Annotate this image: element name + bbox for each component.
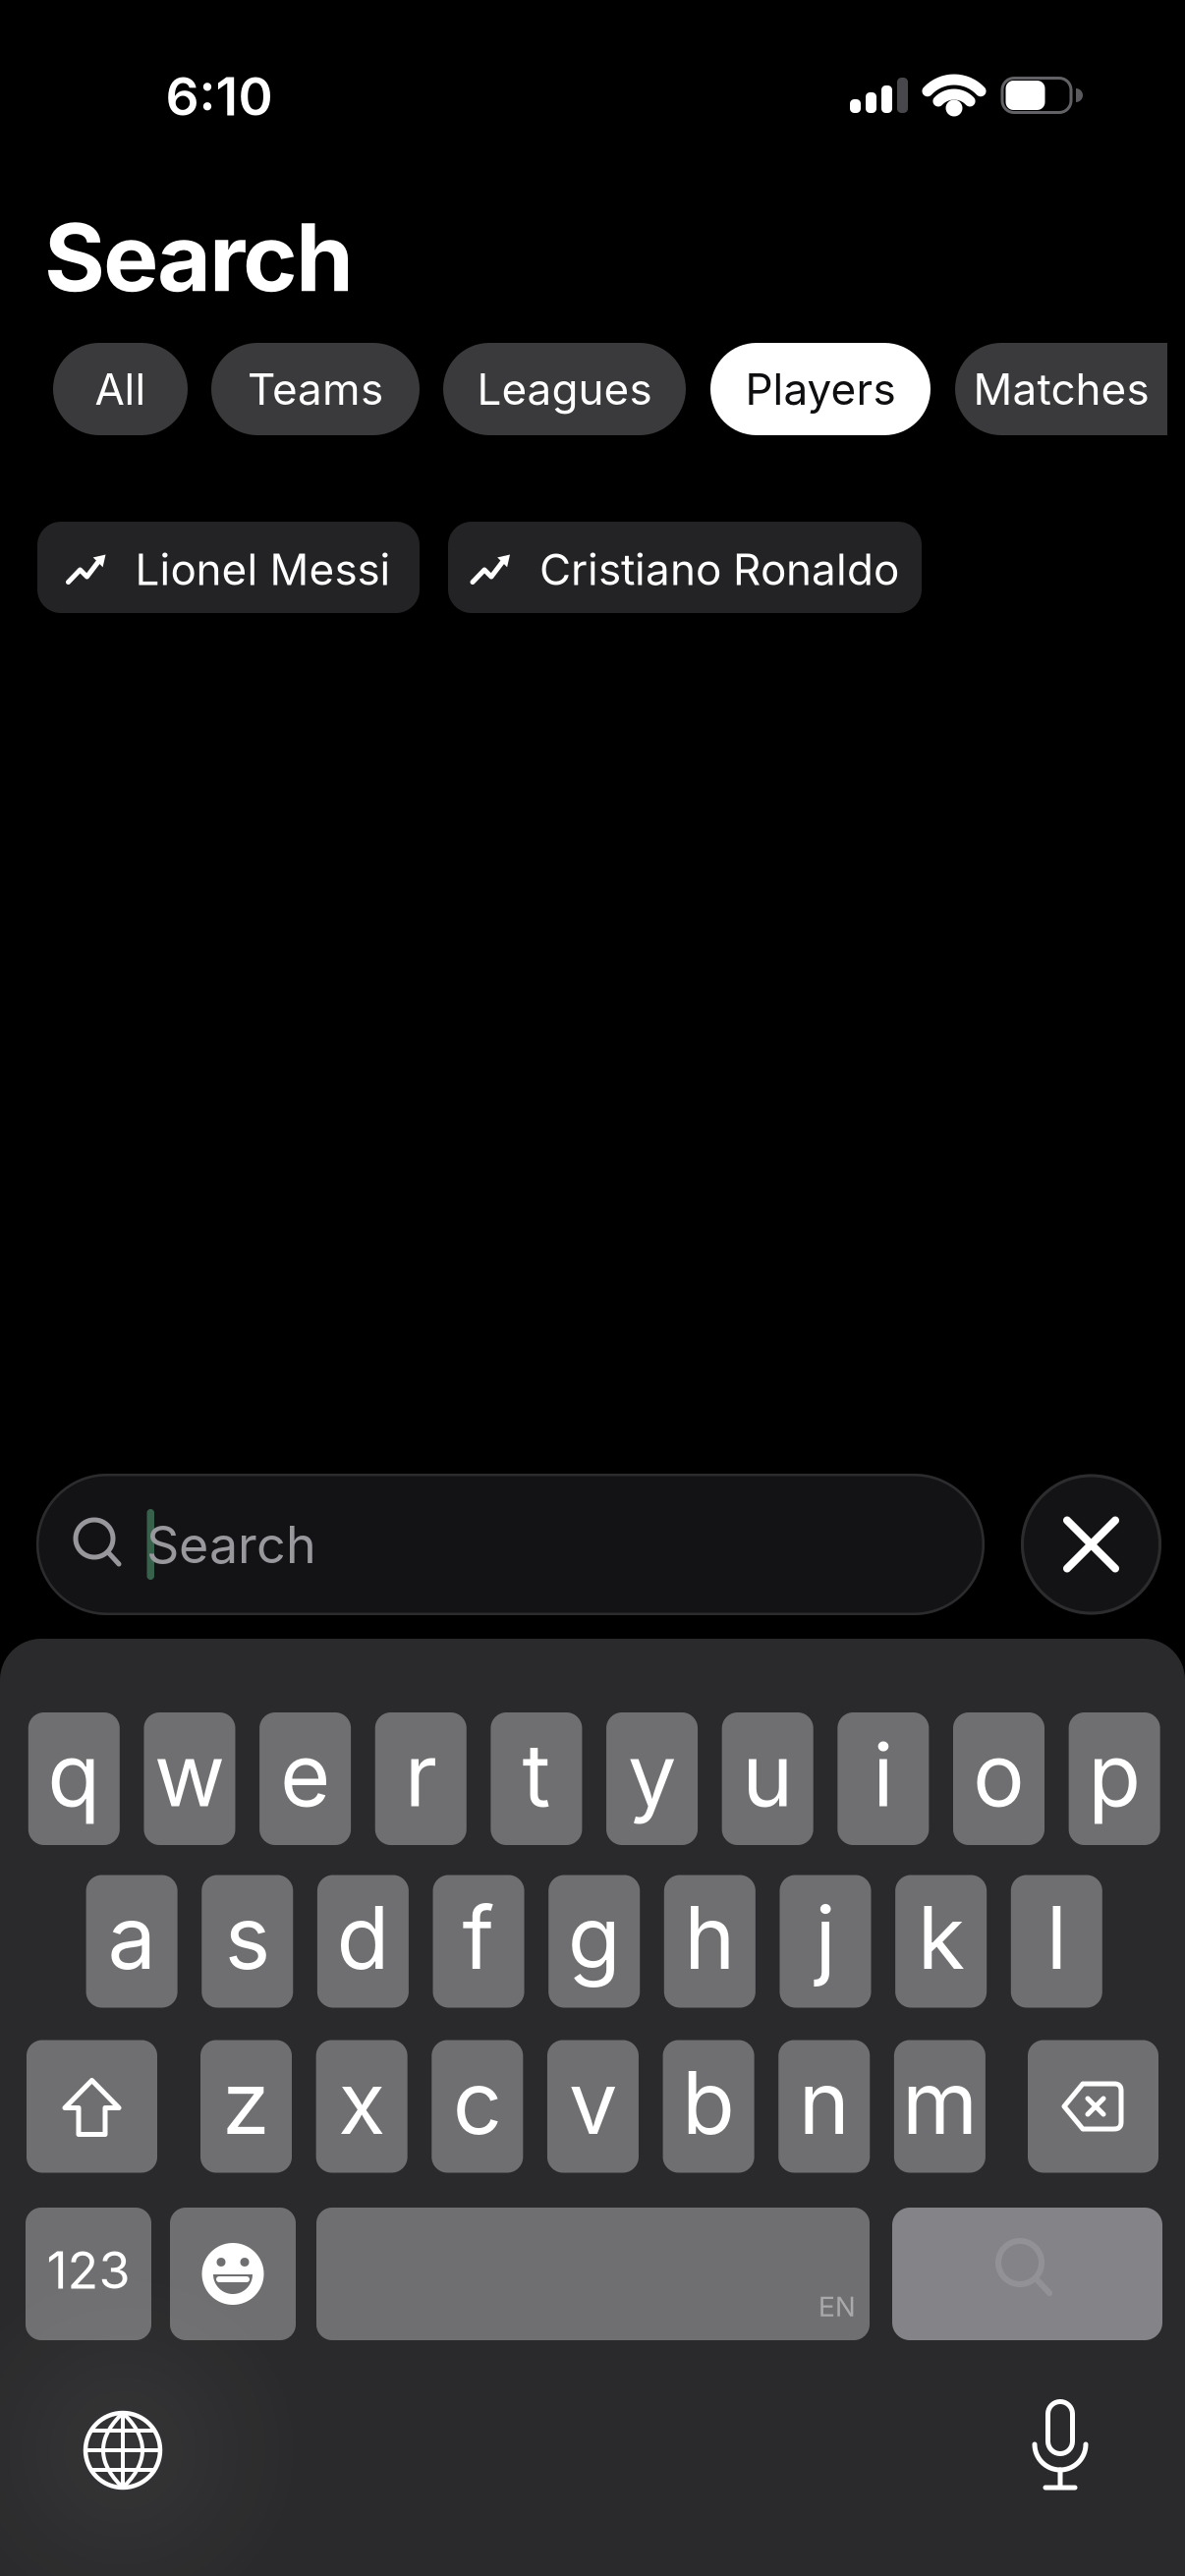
staticText: Cristiano Ronaldo (539, 544, 899, 595)
button[interactable]: i (838, 1712, 929, 1845)
button[interactable]: t (491, 1712, 582, 1845)
staticText: Leagues (477, 364, 652, 414)
button[interactable]: q (28, 1712, 120, 1845)
button[interactable]: s (202, 1875, 293, 2008)
staticText: f (462, 1886, 495, 1988)
button[interactable]: v (547, 2040, 639, 2173)
staticText: j (815, 1886, 836, 1988)
button[interactable]: x (316, 2040, 407, 2173)
staticText: m (902, 2051, 978, 2153)
staticText: All (95, 364, 146, 414)
staticText: i (873, 1724, 894, 1826)
button[interactable]: Lionel Messi (37, 522, 420, 613)
staticText: g (568, 1886, 621, 1988)
staticText: z (222, 2051, 270, 2153)
button[interactable]: f (433, 1875, 524, 2008)
button[interactable]: Emoji (170, 2208, 296, 2340)
button[interactable]: d (317, 1875, 409, 2008)
button[interactable]: b (663, 2040, 754, 2173)
staticText: EN (818, 2290, 856, 2323)
staticText: Search (146, 1514, 316, 1574)
staticText: q (47, 1724, 101, 1826)
button[interactable]: Search (36, 1474, 985, 1615)
staticText: t (522, 1724, 551, 1826)
button[interactable]: Teams (211, 343, 420, 435)
staticText: x (338, 2051, 385, 2153)
staticText: y (628, 1724, 676, 1826)
staticText: 6:10 (166, 65, 273, 127)
button[interactable]: j (780, 1875, 871, 2008)
button[interactable]: Delete (1028, 2040, 1158, 2173)
button[interactable]: Players (710, 343, 931, 435)
staticText: 123 (47, 2240, 130, 2300)
button[interactable]: Close (1021, 1474, 1161, 1615)
staticText: e (280, 1724, 330, 1826)
staticText: d (336, 1886, 389, 1988)
staticText: w (154, 1724, 225, 1826)
button[interactable]: h (664, 1875, 756, 2008)
button[interactable]: k (895, 1875, 987, 2008)
staticText: l (1046, 1886, 1067, 1988)
button[interactable]: w (144, 1712, 235, 1845)
button[interactable]: p (1069, 1712, 1160, 1845)
staticText: r (405, 1724, 437, 1826)
staticText: p (1088, 1724, 1141, 1826)
button[interactable]: Shift (27, 2040, 157, 2173)
staticText: Lionel Messi (135, 544, 391, 595)
staticText: c (453, 2051, 502, 2153)
staticText: Players (745, 364, 896, 414)
staticText: Matches (973, 364, 1149, 414)
button[interactable]: Next keyboard (82, 2409, 164, 2492)
staticText: Search (44, 202, 354, 312)
button[interactable]: Dictate (1026, 2399, 1095, 2490)
staticText: k (917, 1886, 965, 1988)
button[interactable]: Space (316, 2208, 870, 2340)
button[interactable]: y (606, 1712, 698, 1845)
button[interactable]: c (432, 2040, 523, 2173)
staticText: v (569, 2051, 617, 2153)
staticText: o (973, 1724, 1025, 1826)
button[interactable]: o (953, 1712, 1044, 1845)
staticText: h (684, 1886, 735, 1988)
button[interactable]: Leagues (443, 343, 686, 435)
button[interactable]: g (548, 1875, 640, 2008)
button[interactable]: a (86, 1875, 177, 2008)
button[interactable]: z (200, 2040, 292, 2173)
staticText: n (799, 2051, 850, 2153)
button[interactable]: n (778, 2040, 870, 2173)
button[interactable]: u (722, 1712, 813, 1845)
button[interactable]: m (894, 2040, 985, 2173)
staticText: Teams (248, 364, 383, 414)
button[interactable]: r (375, 1712, 467, 1845)
button[interactable]: l (1011, 1875, 1102, 2008)
button[interactable]: e (260, 1712, 351, 1845)
button[interactable]: Search (892, 2208, 1162, 2340)
staticText: s (225, 1886, 270, 1988)
button[interactable]: Matches (955, 343, 1185, 435)
staticText: u (742, 1724, 793, 1826)
staticText: b (682, 2051, 735, 2153)
staticText: a (108, 1886, 156, 1988)
button[interactable]: Cristiano Ronaldo (448, 522, 922, 613)
button[interactable]: Numbers (26, 2208, 151, 2340)
button[interactable]: All (53, 343, 188, 435)
